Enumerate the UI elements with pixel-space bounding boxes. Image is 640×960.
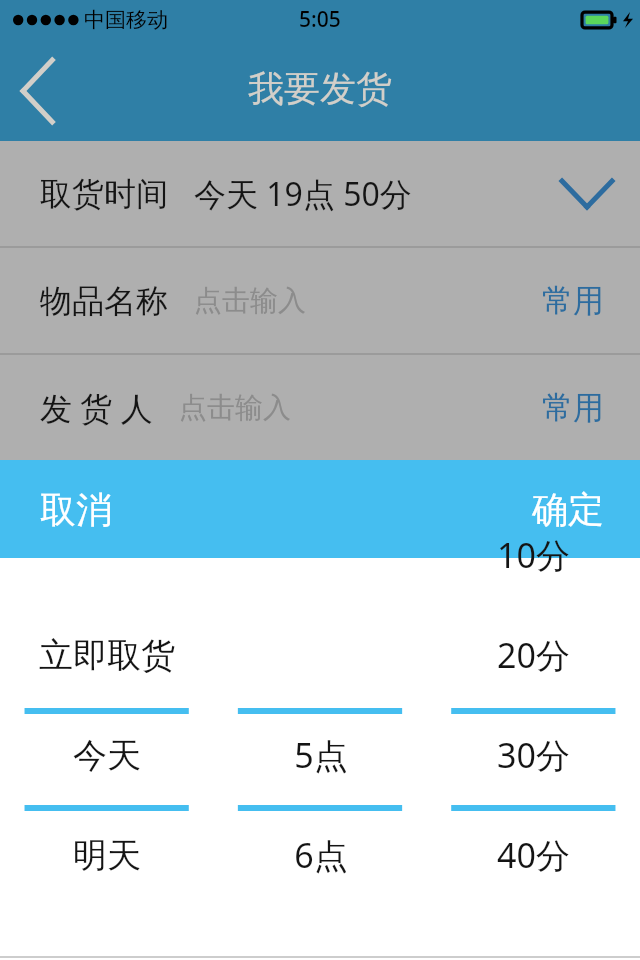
button[interactable]: 取消	[0, 460, 180, 558]
button[interactable]: 确定	[460, 460, 640, 558]
staticText: 确定	[532, 487, 604, 532]
staticText: 常用	[542, 388, 604, 427]
button[interactable]: 物品名称	[0, 248, 640, 353]
staticText: 40分	[497, 832, 570, 878]
staticText: 取货时间	[40, 174, 168, 214]
staticText: 取消	[40, 487, 112, 532]
staticText: 物品名称	[40, 281, 168, 321]
staticText: 30分	[497, 732, 570, 778]
button[interactable]: 取货时间	[0, 141, 640, 246]
staticText: 发 货 人	[40, 386, 153, 430]
staticText: 10分	[497, 532, 570, 578]
button[interactable]: 5点	[214, 505, 427, 907]
staticText: 5:05	[299, 5, 341, 34]
staticText: 20分	[497, 632, 570, 678]
staticText: 点击输入	[179, 390, 291, 425]
staticText: 常用	[542, 281, 604, 320]
staticText: 立即取货	[39, 634, 175, 677]
button[interactable]: 10分	[427, 505, 640, 907]
staticText: 中国移动	[84, 7, 168, 33]
button[interactable]: 常用	[542, 388, 604, 427]
staticText: 明天	[73, 834, 141, 877]
staticText: 我要发货	[248, 66, 392, 111]
staticText: 今天 19点 50分	[194, 172, 412, 216]
staticText: 6点	[294, 832, 348, 878]
staticText: 5点	[294, 732, 348, 778]
staticText: 点击输入	[194, 283, 306, 318]
button[interactable]: 常用	[542, 281, 604, 320]
button[interactable]: Back	[0, 40, 76, 141]
staticText: 今天	[73, 734, 141, 777]
button[interactable]: 发 货 人	[0, 355, 640, 460]
button[interactable]: 立即取货	[0, 505, 214, 907]
